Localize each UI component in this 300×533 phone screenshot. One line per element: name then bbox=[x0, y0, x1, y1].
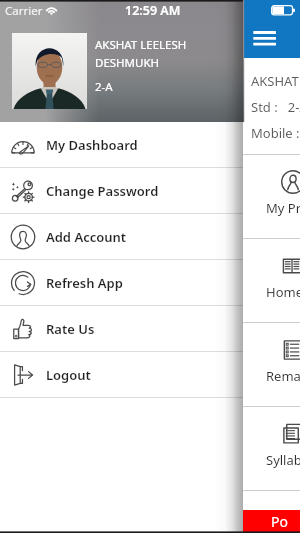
staticText: AKSHAT LEELESH bbox=[251, 72, 300, 90]
staticText: Syllabus bbox=[266, 451, 300, 469]
staticText: Carrier bbox=[5, 3, 43, 19]
button[interactable]: Rate Us bbox=[0, 306, 243, 351]
button[interactable]: Logout bbox=[0, 352, 243, 397]
button[interactable]: Add Account bbox=[0, 214, 243, 259]
staticText: Std : 2-A bbox=[251, 98, 300, 116]
staticText: My Dashboard bbox=[46, 136, 138, 154]
button[interactable]: My Profile bbox=[243, 155, 300, 238]
staticText: Rate Us bbox=[46, 320, 95, 338]
staticText: Remark bbox=[266, 367, 300, 385]
button[interactable]: Syllabus bbox=[243, 407, 300, 490]
button[interactable]: Po bbox=[243, 510, 300, 533]
button[interactable]: Open navigation menu bbox=[249, 27, 280, 50]
staticText: DESHMUKH bbox=[95, 55, 160, 71]
button[interactable]: Homework bbox=[243, 239, 300, 322]
staticText: Homework bbox=[266, 283, 300, 301]
staticText: Change Password bbox=[46, 182, 159, 200]
button[interactable]: Refresh App bbox=[0, 260, 243, 305]
staticText: Mobile : 9876543210 bbox=[251, 124, 300, 142]
button[interactable]: Change Password bbox=[0, 168, 243, 213]
staticText: Refresh App bbox=[46, 274, 123, 292]
staticText: 12:59 AM bbox=[125, 2, 181, 19]
staticText: My Profile bbox=[266, 199, 300, 217]
staticText: Logout bbox=[46, 366, 91, 384]
button[interactable]: Photos bbox=[243, 491, 300, 533]
staticText: 2-A bbox=[95, 79, 113, 95]
staticText: AKSHAT LEELESH bbox=[95, 37, 187, 53]
button[interactable]: My Dashboard bbox=[0, 122, 243, 167]
button[interactable]: Remark bbox=[243, 323, 300, 406]
staticText: Po bbox=[271, 512, 288, 531]
staticText: Add Account bbox=[46, 228, 127, 246]
